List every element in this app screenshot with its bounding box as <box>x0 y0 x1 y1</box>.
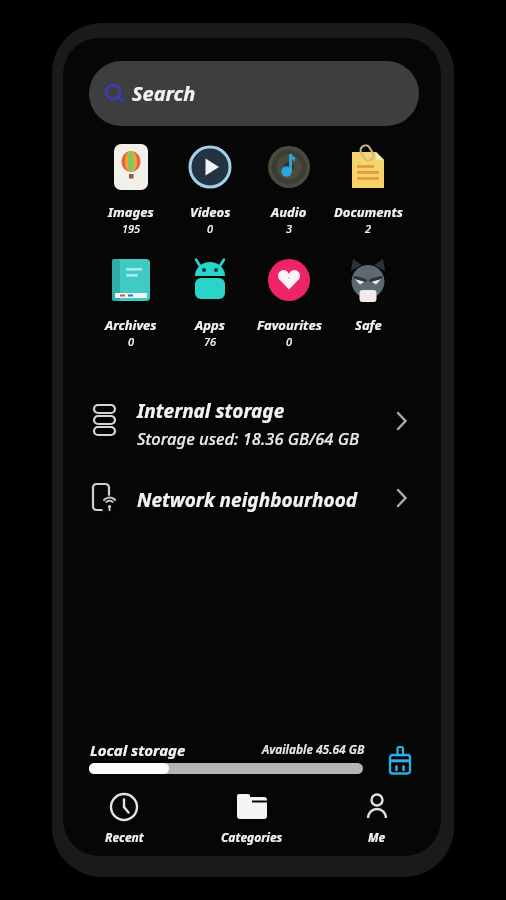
staticText: Categories <box>221 829 283 845</box>
staticText: Favourites <box>257 316 322 334</box>
staticText: Internal storage <box>137 398 285 424</box>
button[interactable] <box>80 392 420 454</box>
staticText: Available 45.64 GB <box>262 741 365 757</box>
button[interactable]: Recent <box>69 792 179 848</box>
button[interactable]: Safe <box>318 257 418 334</box>
staticText: 2 <box>365 221 372 236</box>
staticText: Archives <box>105 316 157 334</box>
staticText: Search <box>132 80 196 107</box>
staticText: Images <box>108 203 154 221</box>
staticText: Videos <box>190 203 231 221</box>
button[interactable] <box>80 475 420 523</box>
staticText: 195 <box>122 221 141 236</box>
button[interactable]: Videos <box>160 144 260 236</box>
staticText: Apps <box>195 316 225 334</box>
staticText: 0 <box>207 221 214 236</box>
button[interactable]: Me <box>322 792 432 848</box>
button[interactable]: Categories <box>197 792 307 848</box>
button[interactable]: Images <box>81 144 181 236</box>
staticText: Safe <box>355 316 382 334</box>
staticText: Audio <box>271 203 307 221</box>
staticText: Local storage <box>90 740 186 760</box>
staticText: Storage used: 18.36 GB/64 GB <box>137 427 359 449</box>
staticText: Recent <box>105 829 144 845</box>
staticText: Documents <box>334 203 403 221</box>
button[interactable]: Favourites <box>239 257 339 349</box>
staticText: 0 <box>286 334 293 349</box>
staticText: 76 <box>204 334 217 349</box>
button[interactable]: Audio <box>239 144 339 236</box>
staticText: Me <box>368 829 386 845</box>
staticText: Network neighbourhood <box>137 487 358 513</box>
button[interactable] <box>383 744 417 778</box>
button[interactable]: Archives <box>81 257 181 349</box>
button[interactable]: Documents <box>318 144 418 236</box>
button[interactable]: Search <box>89 61 419 126</box>
staticText: 0 <box>128 334 135 349</box>
button[interactable]: Apps <box>160 257 260 349</box>
staticText: 3 <box>286 221 293 236</box>
